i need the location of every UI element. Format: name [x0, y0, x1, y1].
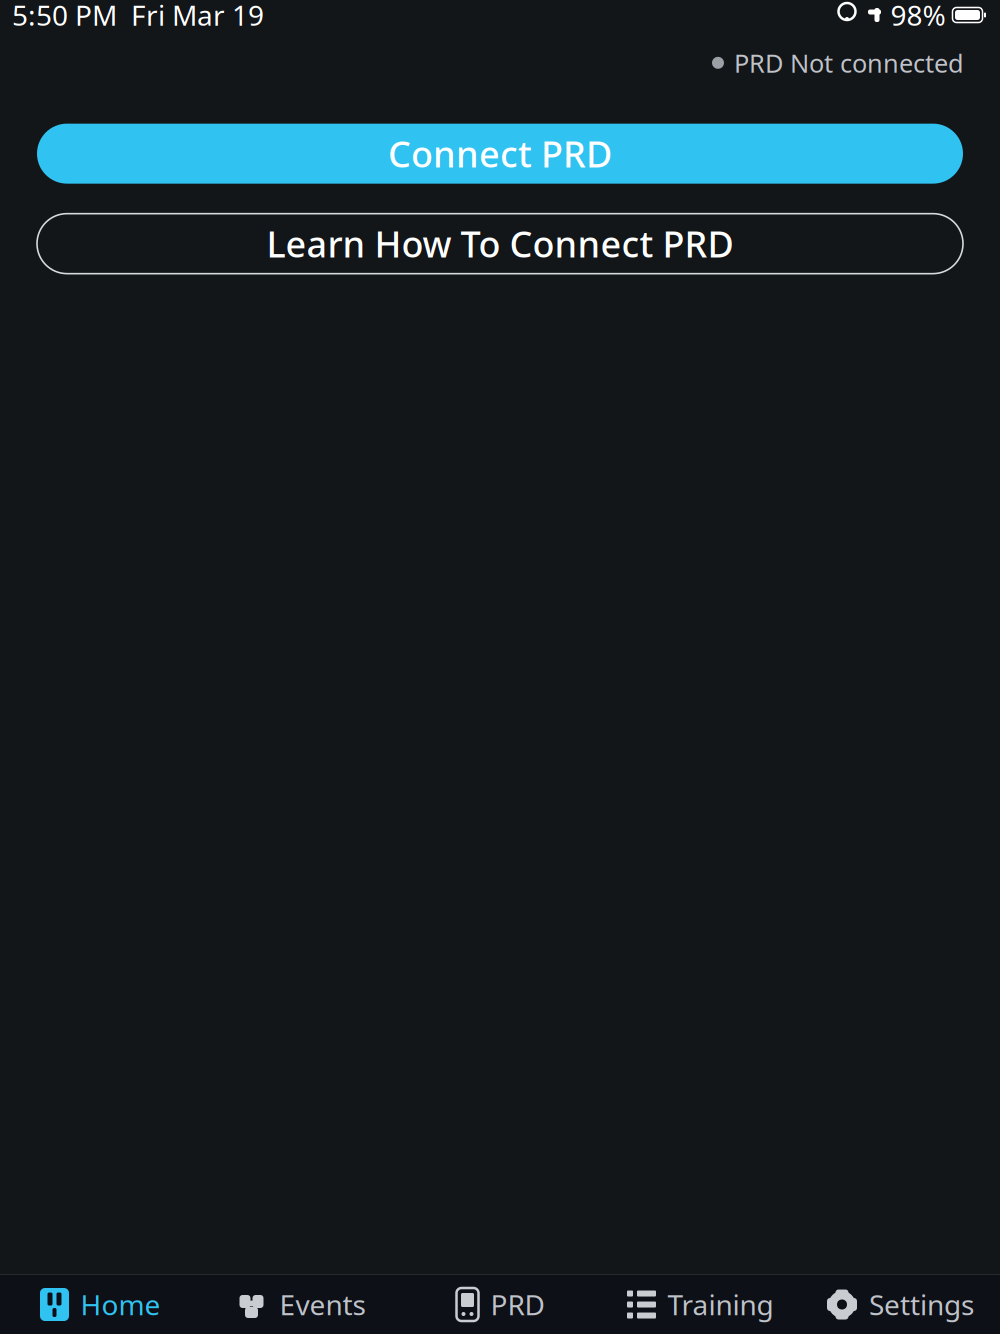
staticText: Training — [667, 1286, 773, 1323]
button[interactable]: Connect PRD — [0, 124, 1000, 184]
button[interactable]: Events — [200, 1275, 400, 1334]
staticText: Settings — [869, 1286, 974, 1323]
staticText: 5:50 PM — [12, 0, 117, 34]
button[interactable]: Learn How To Connect PRD — [0, 214, 1000, 274]
staticText: Home — [80, 1286, 160, 1323]
button[interactable]: PRD — [400, 1275, 600, 1334]
staticText: Events — [279, 1286, 365, 1323]
staticText: Connect PRD — [388, 130, 612, 177]
staticText: 98% — [890, 0, 945, 34]
button[interactable]: Home — [0, 1275, 200, 1334]
staticText: PRD Not connected — [734, 46, 964, 80]
staticText: PRD — [490, 1286, 544, 1323]
staticText: Learn How To Connect PRD — [266, 220, 733, 267]
button[interactable]: Settings — [800, 1275, 1000, 1334]
button[interactable]: Training — [600, 1275, 800, 1334]
staticText: Fri Mar 19 — [131, 0, 264, 34]
